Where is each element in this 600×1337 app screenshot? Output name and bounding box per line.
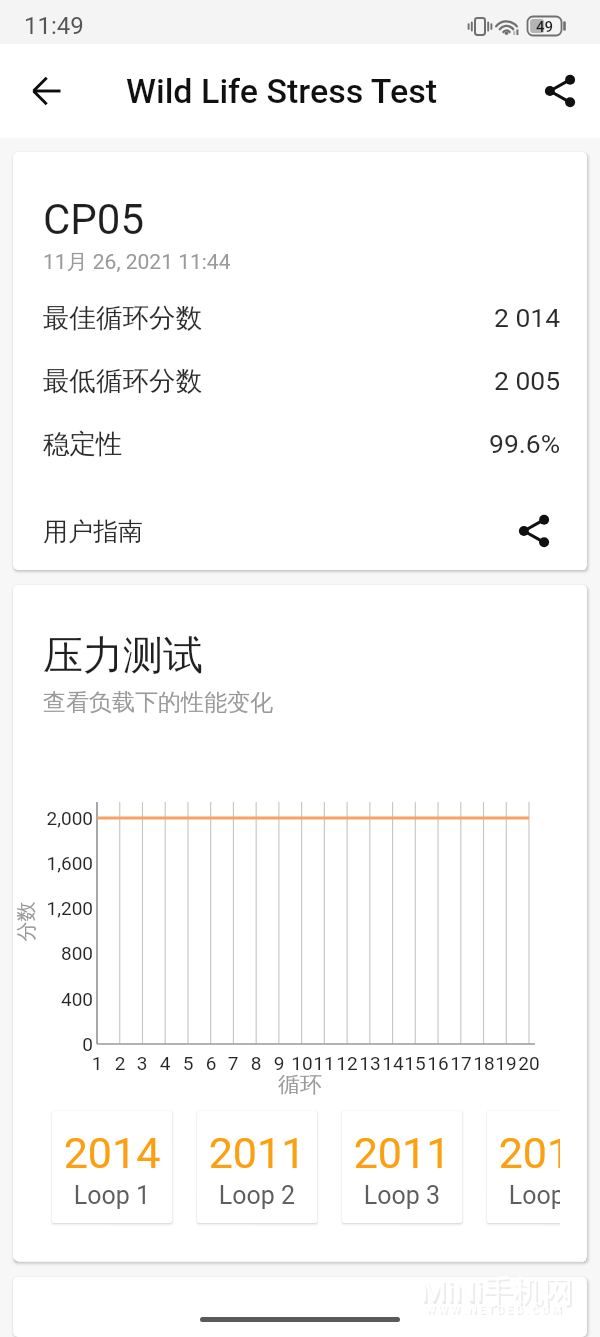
staticText: W W W . N E T D E D . C O M bbox=[425, 1303, 561, 1316]
button[interactable]: 稳定性 bbox=[13, 418, 587, 468]
button[interactable]: 2011 bbox=[197, 1111, 317, 1223]
staticText: 14 bbox=[379, 1052, 407, 1074]
staticText: 11:49 bbox=[24, 12, 84, 40]
staticText: 2 014 bbox=[494, 302, 561, 333]
staticText: Loop 3 bbox=[342, 1181, 462, 1210]
staticText: 19 bbox=[492, 1052, 520, 1074]
staticText: 用户指南 bbox=[43, 516, 143, 547]
staticText: 1,200 bbox=[23, 897, 93, 919]
staticText: 分数 bbox=[13, 897, 38, 945]
staticText: 12 bbox=[333, 1052, 361, 1074]
staticText: 2 bbox=[106, 1052, 134, 1074]
staticText: Loop 2 bbox=[197, 1181, 317, 1210]
staticText: 16 bbox=[424, 1052, 452, 1074]
staticText: 18 bbox=[470, 1052, 498, 1074]
staticText: MiNi手机网 bbox=[420, 1272, 573, 1310]
staticText: 11 bbox=[310, 1052, 338, 1074]
button[interactable]: 2011 bbox=[487, 1111, 560, 1223]
staticText: 2011 bbox=[342, 1128, 462, 1178]
button[interactable]: 2014 bbox=[52, 1111, 172, 1223]
staticText: Loop 1 bbox=[52, 1181, 172, 1210]
staticText: 压力测试 bbox=[43, 630, 203, 680]
staticText: 400 bbox=[23, 988, 93, 1010]
staticText: 6 bbox=[197, 1052, 225, 1074]
staticText: 20 bbox=[515, 1052, 543, 1074]
staticText: 2011 bbox=[487, 1128, 560, 1178]
staticText: 1,600 bbox=[23, 852, 93, 874]
staticText: 5 bbox=[174, 1052, 202, 1074]
staticText: W W W . N E T D E D . C O M bbox=[427, 1305, 563, 1318]
staticText: MiNi手机网 bbox=[422, 1275, 575, 1313]
staticText: 2,000 bbox=[23, 807, 93, 829]
button[interactable]: 2011 bbox=[342, 1111, 462, 1223]
staticText: 2011 bbox=[197, 1128, 317, 1178]
staticText: 10 bbox=[288, 1052, 316, 1074]
button[interactable]: Back bbox=[19, 63, 75, 119]
staticText: Wild Life Stress Test bbox=[126, 71, 438, 111]
staticText: CP05 bbox=[43, 195, 145, 244]
button[interactable]: 最低循环分数 bbox=[13, 355, 587, 405]
button[interactable]: 用户指南 bbox=[13, 500, 587, 562]
staticText: 11月 26, 2021 11:44 bbox=[43, 249, 231, 275]
staticText: 8 bbox=[242, 1052, 270, 1074]
staticText: 99.6% bbox=[489, 428, 561, 459]
staticText: 3 bbox=[128, 1052, 156, 1074]
staticText: 800 bbox=[23, 942, 93, 964]
staticText: Loop 4 bbox=[487, 1181, 560, 1210]
staticText: 1 bbox=[83, 1052, 111, 1074]
staticText: 最佳循环分数 bbox=[43, 301, 202, 334]
staticText: 17 bbox=[447, 1052, 475, 1074]
staticText: 9 bbox=[265, 1052, 293, 1074]
staticText: 13 bbox=[356, 1052, 384, 1074]
staticText: 2014 bbox=[52, 1128, 172, 1178]
staticText: 15 bbox=[401, 1052, 429, 1074]
staticText: 49 bbox=[527, 18, 562, 36]
staticText: 0 bbox=[23, 1033, 93, 1055]
staticText: 循环 bbox=[250, 1071, 350, 1099]
staticText: 稳定性 bbox=[43, 427, 123, 460]
button[interactable]: Share bbox=[532, 63, 588, 119]
staticText: 查看负载下的性能变化 bbox=[43, 688, 273, 717]
staticText: 4 bbox=[151, 1052, 179, 1074]
staticText: 7 bbox=[219, 1052, 247, 1074]
staticText: 最低循环分数 bbox=[43, 364, 202, 397]
staticText: 2 005 bbox=[494, 365, 561, 396]
button[interactable]: 最佳循环分数 bbox=[13, 292, 587, 342]
